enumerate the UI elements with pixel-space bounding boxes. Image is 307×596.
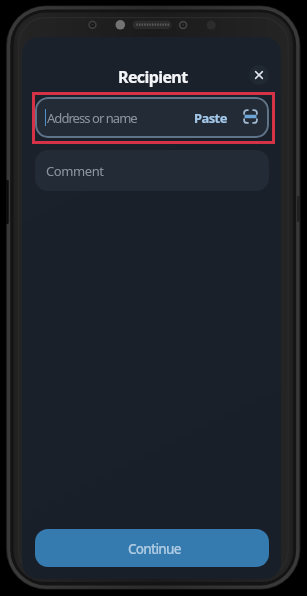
- staticText: Comment: [46, 162, 104, 180]
- button[interactable]: Comment: [35, 150, 269, 191]
- button[interactable]: Paste: [192, 109, 229, 127]
- button[interactable]: Scan QR code: [243, 109, 258, 124]
- button[interactable]: Address or name: [35, 97, 269, 138]
- staticText: Address or name: [47, 109, 137, 127]
- staticText: Continue: [128, 540, 181, 558]
- staticText: Recipient: [118, 66, 188, 88]
- button[interactable]: Continue: [35, 529, 269, 567]
- button[interactable]: Close: [249, 65, 269, 85]
